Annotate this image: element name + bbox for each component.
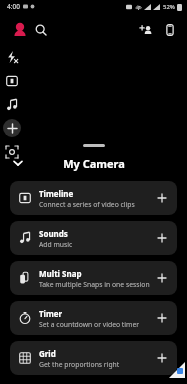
button[interactable]: Filters bbox=[2, 71, 22, 91]
button[interactable]: More tools bbox=[3, 119, 21, 137]
button[interactable]: Add friends bbox=[135, 19, 157, 41]
staticText: Add music bbox=[39, 240, 73, 249]
staticText: My Camera bbox=[63, 156, 125, 171]
staticText: Set a countdown or video timer bbox=[39, 320, 140, 329]
button[interactable]: Profile bbox=[9, 19, 31, 41]
button[interactable]: Flash off bbox=[2, 47, 22, 67]
button[interactable]: Timeline bbox=[10, 181, 177, 215]
staticText: Timer bbox=[39, 308, 63, 319]
staticText: 4:00 bbox=[7, 2, 20, 11]
staticText: Get the proportions right bbox=[39, 360, 120, 369]
button[interactable]: Search bbox=[30, 19, 52, 41]
button[interactable]: Add Timeline bbox=[153, 189, 171, 207]
button[interactable]: Add Multi Snap bbox=[153, 269, 171, 287]
button[interactable]: Collapse bbox=[8, 154, 28, 172]
button[interactable]: Sounds bbox=[2, 95, 22, 115]
button[interactable]: Add Grid bbox=[153, 349, 171, 367]
button[interactable]: Sounds bbox=[10, 221, 177, 255]
staticText: Grid bbox=[39, 348, 56, 359]
button[interactable]: Flip camera bbox=[159, 19, 181, 41]
staticText: Sounds bbox=[39, 228, 68, 239]
button[interactable]: Grid bbox=[10, 341, 177, 375]
button[interactable]: Multi Snap bbox=[10, 261, 177, 295]
button[interactable]: Add Sounds bbox=[153, 229, 171, 247]
button[interactable]: Scan bbox=[2, 142, 22, 162]
button[interactable]: Add Timer bbox=[153, 309, 171, 327]
staticText: 52% bbox=[163, 3, 175, 11]
staticText: Multi Snap bbox=[39, 268, 82, 279]
staticText: Timeline bbox=[39, 188, 74, 199]
button[interactable]: Timer bbox=[10, 301, 177, 335]
staticText: Take multiple Snaps in one session bbox=[39, 280, 150, 289]
staticText: Connect a series of video clips bbox=[39, 200, 135, 209]
